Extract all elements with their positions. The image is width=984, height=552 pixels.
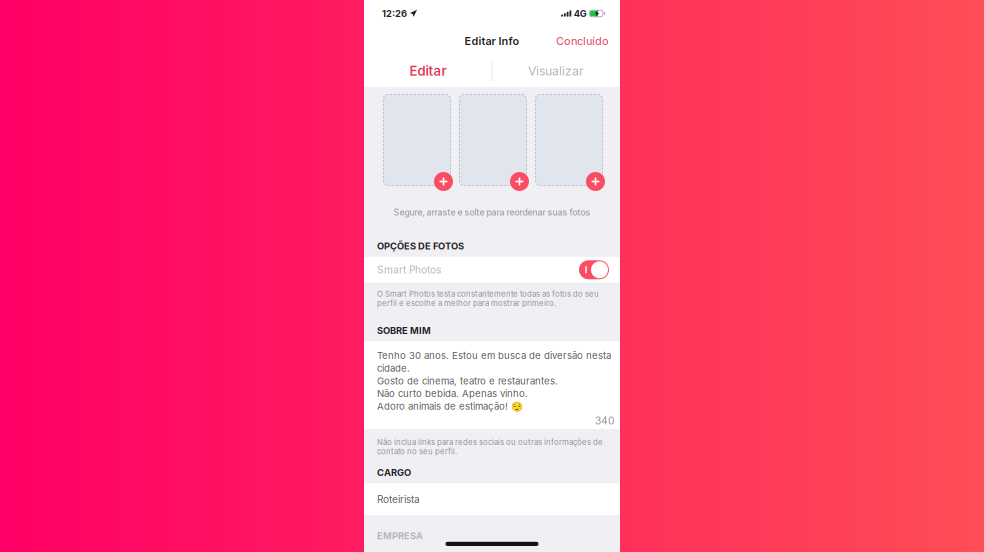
button[interactable]: Adicionar foto — [434, 172, 453, 191]
staticText: 4G — [574, 8, 587, 19]
staticText: O Smart Photos testa constantemente toda… — [377, 289, 599, 299]
staticText: 340 — [595, 415, 614, 427]
button[interactable]: Adicionar foto — [586, 172, 605, 191]
staticText: OPÇÕES DE FOTOS — [377, 240, 464, 252]
staticText: Tenho 30 anos. Estou em busca de diversã… — [377, 350, 611, 361]
staticText: Segure, arraste e solte para reordenar s… — [393, 207, 590, 217]
button[interactable]: Editar — [364, 55, 492, 87]
staticText: cidade. — [377, 362, 410, 374]
staticText: Smart Photos — [377, 264, 441, 276]
staticText: Concluído — [556, 34, 609, 48]
staticText: perfil e escolhe a melhor para mostrar p… — [377, 299, 556, 308]
staticText: 12:26 — [382, 8, 407, 19]
staticText: SOBRE MIM — [377, 325, 431, 336]
staticText: Roteirista — [377, 493, 420, 505]
staticText: Não inclua links para redes sociais ou o… — [377, 437, 603, 447]
button[interactable]: Roteirista — [364, 483, 620, 515]
staticText: Adoro animais de estimação! 😌 — [377, 400, 523, 412]
staticText: Não curto bebida. Apenas vinho. — [377, 388, 528, 399]
staticText: Editar — [409, 63, 446, 79]
staticText: Visualizar — [528, 64, 584, 78]
staticText: CARGO — [377, 467, 411, 478]
staticText: Editar Info — [464, 34, 519, 48]
staticText: Gosto de cinema, teatro e restaurantes. — [377, 375, 558, 387]
staticText: EMPRESA — [377, 530, 423, 542]
button[interactable]: Smart Photos — [579, 260, 609, 279]
button[interactable]: Adicionar foto — [510, 172, 529, 191]
button[interactable]: Concluído — [556, 28, 620, 54]
button[interactable]: Visualizar — [492, 55, 620, 87]
staticText: contato no seu perfil. — [377, 447, 457, 456]
